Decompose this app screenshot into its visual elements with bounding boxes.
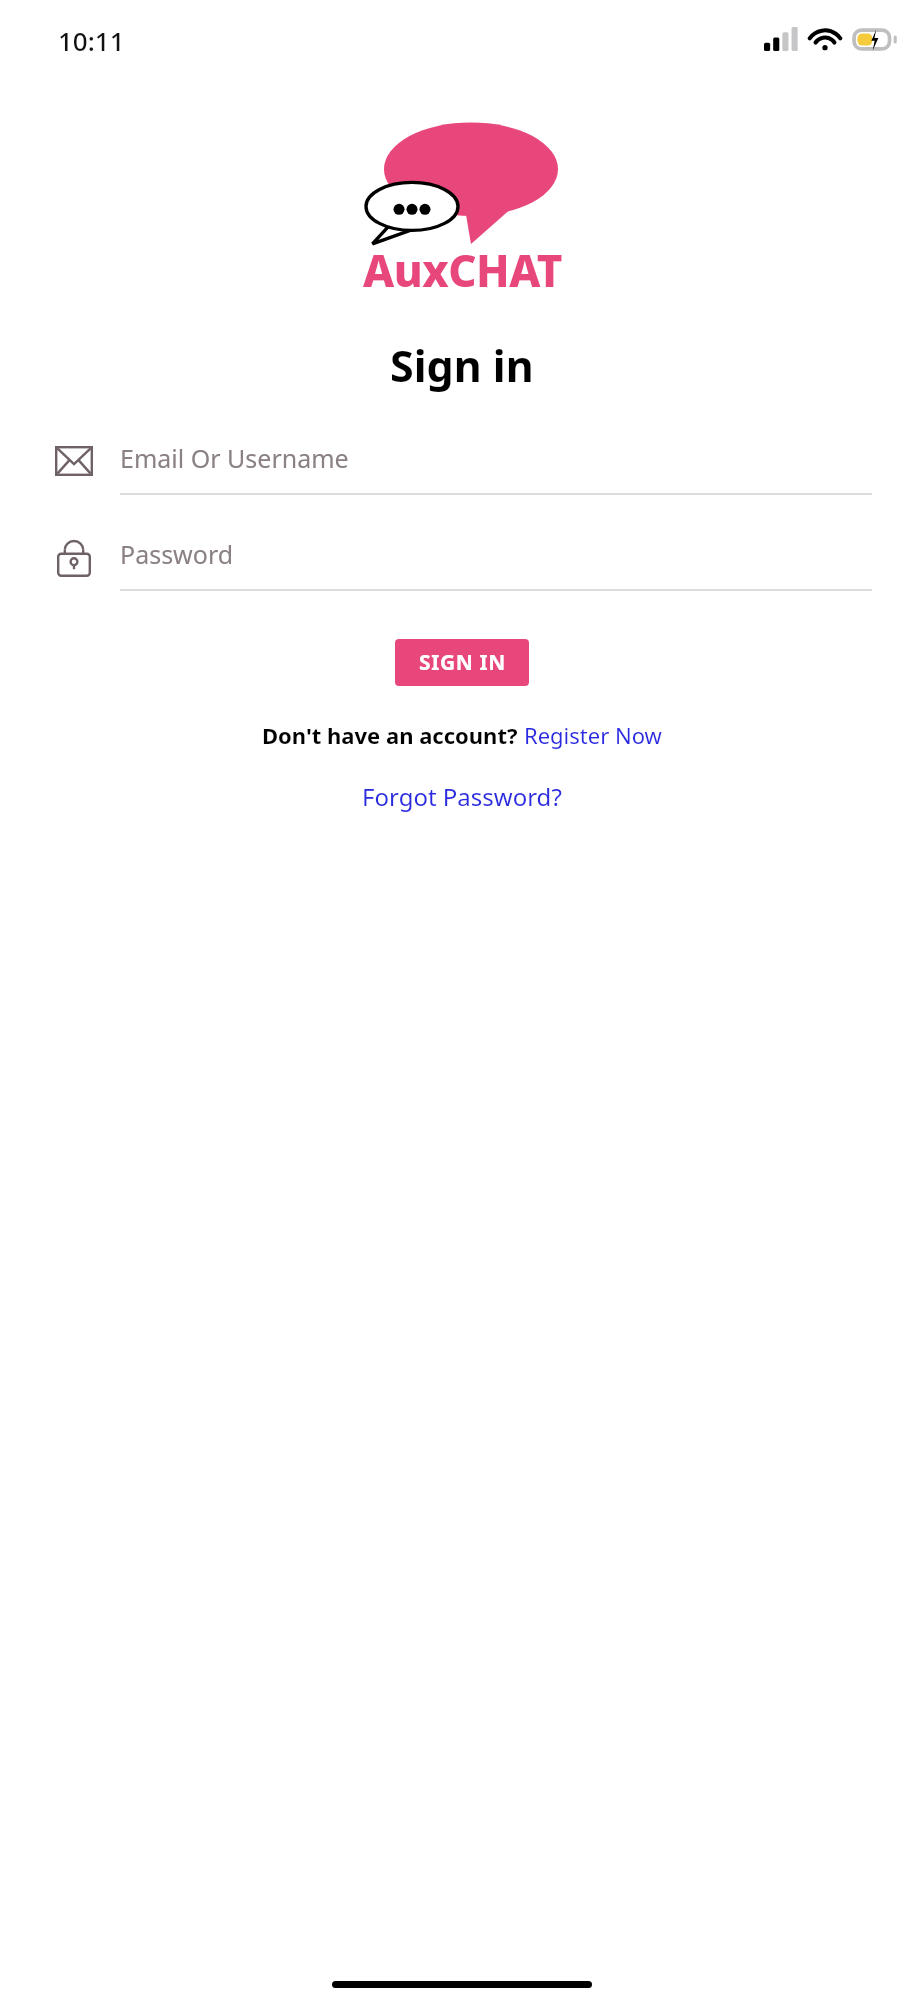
- staticText: Email Or Username: [120, 441, 349, 475]
- staticText: AuxCHAT: [363, 240, 562, 300]
- staticText: Password: [120, 537, 234, 571]
- button[interactable]: SIGN IN: [395, 639, 529, 686]
- button[interactable]: Email: [0, 437, 924, 503]
- other: Email: [52, 439, 96, 483]
- button[interactable]: Password: [0, 533, 924, 599]
- button[interactable]: Forgot Password?: [352, 776, 572, 817]
- staticText: Don't have an account?: [262, 720, 524, 750]
- other: Password: [52, 535, 96, 579]
- button[interactable]: Don't have an account?: [254, 716, 670, 754]
- staticText: Sign in: [390, 336, 534, 395]
- staticText: 10:11: [58, 23, 125, 58]
- staticText: Forgot Password?: [362, 780, 562, 813]
- staticText: Register Now: [524, 720, 662, 750]
- staticText: SIGN IN: [419, 648, 506, 677]
